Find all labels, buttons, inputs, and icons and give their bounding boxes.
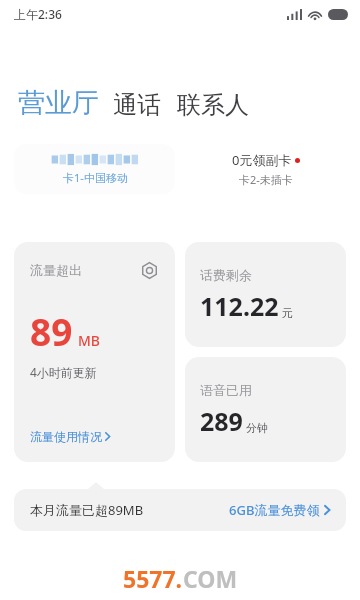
button[interactable]: 流量使用情况 <box>30 429 110 444</box>
staticText: 元 <box>282 306 293 320</box>
button[interactable]: 卡1-中国移动 <box>14 144 175 194</box>
staticText: 4小时前更新 <box>30 364 97 380</box>
button[interactable]: 联系人 <box>177 90 253 120</box>
staticText: MB <box>78 331 101 350</box>
staticText: 分钟 <box>246 421 268 435</box>
staticText: 289 <box>200 404 243 438</box>
staticText: 语音已用 <box>200 382 252 398</box>
button[interactable]: 话费剩余 <box>185 242 346 347</box>
button[interactable]: 通话 <box>113 90 165 120</box>
staticText: 89 <box>30 306 73 356</box>
staticText: 本月流量已超89MB <box>30 501 144 519</box>
button[interactable]: 流量超出 <box>14 242 175 462</box>
button[interactable]: 0元领副卡 <box>185 144 346 194</box>
staticText: 联系人 <box>177 90 249 120</box>
staticText: 通话 <box>113 90 161 120</box>
staticText: 营业厅 <box>18 86 99 120</box>
button[interactable]: 流量设置 <box>139 260 159 280</box>
staticText: 流量超出 <box>30 262 82 278</box>
staticText: 5577. <box>123 563 183 594</box>
staticText: 上午2:36 <box>14 6 62 22</box>
staticText: 卡2-未插卡 <box>239 172 293 187</box>
staticText: 6GB流量免费领 <box>229 501 320 519</box>
button[interactable]: 本月流量已超89MB <box>14 489 346 531</box>
staticText: 流量使用情况 <box>30 429 102 444</box>
staticText: 话费剩余 <box>200 267 252 283</box>
button[interactable]: 语音已用 <box>185 357 346 462</box>
staticText: 卡1-中国移动 <box>63 170 128 185</box>
staticText: 112.22 <box>200 289 279 323</box>
button[interactable]: 营业厅 <box>18 86 103 120</box>
staticText: COM <box>183 563 238 594</box>
staticText: 0元领副卡 <box>232 151 292 169</box>
